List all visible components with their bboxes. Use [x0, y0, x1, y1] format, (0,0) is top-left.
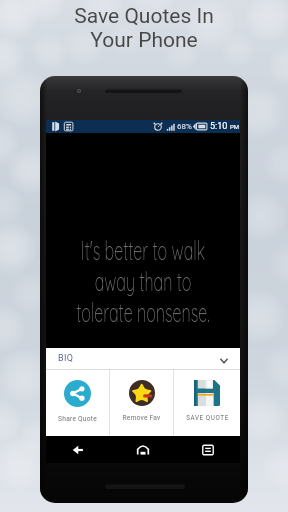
staticText: It's better to walk away than to tolerat… [44, 234, 242, 329]
button[interactable]: Share Quote [46, 370, 109, 436]
button[interactable]: Remove Fav [110, 370, 173, 436]
button[interactable]: BIQ [46, 348, 240, 369]
button[interactable]: Recents [175, 436, 240, 463]
staticText: Share Quote [58, 415, 97, 423]
button[interactable]: Back [46, 436, 110, 463]
button[interactable]: Home [110, 436, 175, 463]
staticText: 5:10 [210, 121, 228, 132]
staticText: Remove Fav [122, 414, 161, 422]
staticText: Save Quotes In Your Phone [74, 4, 214, 52]
button[interactable]: SAVE QUOTE [174, 370, 240, 436]
staticText: SAVE QUOTE [186, 414, 229, 421]
staticText: 68% [177, 122, 192, 131]
staticText: BIQ [58, 353, 74, 364]
staticText: PM [230, 123, 240, 130]
